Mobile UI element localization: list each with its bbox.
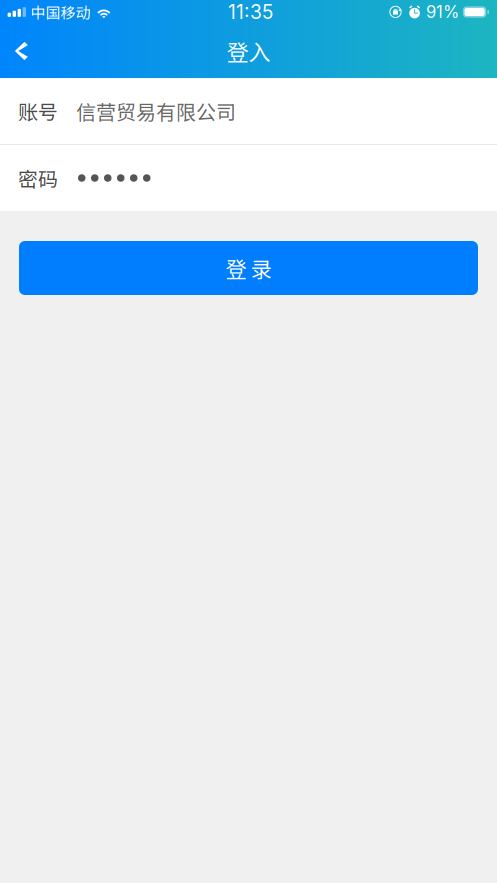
button[interactable]: Back bbox=[0, 31, 45, 71]
staticText: 密码 bbox=[18, 163, 58, 192]
staticText: 中国移动 bbox=[31, 1, 91, 23]
staticText: 信营贸易有限公司 bbox=[76, 96, 236, 125]
button[interactable]: 登 录 bbox=[19, 241, 478, 295]
staticText: 登入 bbox=[226, 35, 270, 67]
staticText: 账号 bbox=[18, 96, 58, 125]
staticText: 91% bbox=[426, 2, 459, 22]
staticText: 11:35 bbox=[228, 0, 273, 24]
staticText: 登 录 bbox=[225, 253, 271, 283]
